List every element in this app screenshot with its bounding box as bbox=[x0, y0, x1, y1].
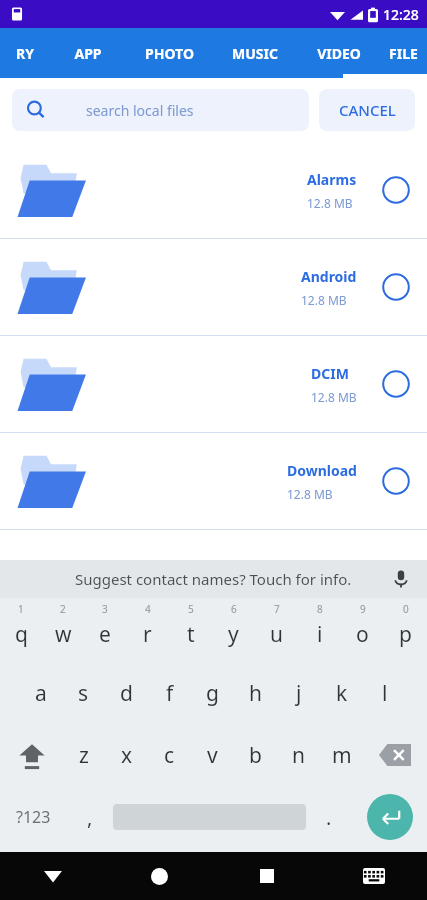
staticText: b bbox=[249, 741, 262, 770]
button[interactable]: b bbox=[234, 724, 277, 786]
button[interactable]: 1 bbox=[0, 598, 42, 662]
staticText: x bbox=[121, 741, 133, 770]
button[interactable]: 0 bbox=[384, 598, 427, 662]
button[interactable]: 5 bbox=[169, 598, 212, 662]
button[interactable]: MUSIC bbox=[213, 28, 297, 78]
button[interactable]: Suggest contact names? Touch for info. bbox=[0, 560, 427, 598]
button[interactable]: v bbox=[191, 724, 234, 786]
staticText: r bbox=[143, 620, 152, 649]
button[interactable]: n bbox=[277, 724, 320, 786]
button[interactable]: RY bbox=[0, 28, 50, 78]
staticText: p bbox=[399, 620, 412, 649]
staticText: PHOTO bbox=[145, 44, 194, 63]
staticText: CANCEL bbox=[339, 100, 396, 120]
staticText: Alarms bbox=[307, 170, 357, 189]
button[interactable]: s bbox=[62, 662, 105, 724]
button[interactable]: Select Download bbox=[381, 466, 411, 496]
button[interactable]: ?123 bbox=[0, 786, 67, 848]
staticText: 8 bbox=[317, 602, 323, 616]
button[interactable]: Switch keyboard bbox=[320, 852, 427, 900]
staticText: , bbox=[87, 804, 93, 831]
button[interactable]: x bbox=[105, 724, 148, 786]
button[interactable]: 3 bbox=[84, 598, 126, 662]
button[interactable]: l bbox=[363, 662, 406, 724]
staticText: m bbox=[332, 741, 352, 770]
staticText: t bbox=[187, 620, 195, 649]
button[interactable]: Voice input bbox=[389, 567, 413, 591]
staticText: l bbox=[382, 679, 388, 708]
staticText: i bbox=[317, 620, 323, 649]
staticText: 0 bbox=[403, 602, 409, 616]
staticText: q bbox=[15, 620, 28, 649]
staticText: u bbox=[270, 620, 283, 649]
button[interactable]: PHOTO bbox=[126, 28, 213, 78]
button[interactable]: 8 bbox=[298, 598, 341, 662]
staticText: Download bbox=[287, 461, 357, 480]
staticText: MUSIC bbox=[232, 44, 278, 63]
staticText: e bbox=[99, 620, 111, 649]
staticText: . bbox=[326, 804, 332, 831]
button[interactable]: c bbox=[148, 724, 191, 786]
button[interactable]: Select DCIM bbox=[381, 369, 411, 399]
button[interactable]: Download bbox=[0, 433, 427, 530]
button[interactable]: 7 bbox=[255, 598, 298, 662]
button[interactable]: search local files bbox=[12, 89, 309, 131]
staticText: 12.8 MB bbox=[311, 389, 357, 405]
button[interactable]: 4 bbox=[126, 598, 169, 662]
button[interactable]: VIDEO bbox=[297, 28, 380, 78]
button[interactable]: 2 bbox=[42, 598, 84, 662]
button[interactable]: Select Android bbox=[381, 272, 411, 302]
staticText: o bbox=[356, 620, 369, 649]
staticText: 9 bbox=[360, 602, 366, 616]
staticText: g bbox=[206, 679, 219, 708]
staticText: 12.8 MB bbox=[307, 195, 353, 211]
staticText: Android bbox=[301, 267, 357, 286]
staticText: RY bbox=[16, 44, 34, 63]
button[interactable]: d bbox=[105, 662, 148, 724]
button[interactable]: Recents bbox=[213, 852, 320, 900]
button[interactable]: Home bbox=[106, 852, 213, 900]
staticText: a bbox=[35, 679, 47, 708]
staticText: 7 bbox=[274, 602, 280, 616]
staticText: c bbox=[164, 741, 175, 770]
button[interactable]: Select Alarms bbox=[381, 175, 411, 205]
staticText: 4 bbox=[145, 602, 151, 616]
button[interactable]: Back bbox=[0, 852, 106, 900]
button[interactable]: Android bbox=[0, 239, 427, 336]
button[interactable]: Alarms bbox=[0, 142, 427, 239]
button[interactable]: h bbox=[234, 662, 277, 724]
staticText: z bbox=[79, 741, 89, 770]
button[interactable]: a bbox=[20, 662, 62, 724]
button[interactable]: 9 bbox=[341, 598, 384, 662]
button[interactable]: g bbox=[191, 662, 234, 724]
button[interactable]: Enter bbox=[352, 786, 427, 848]
staticText: 5 bbox=[188, 602, 194, 616]
button[interactable]: Backspace bbox=[363, 724, 427, 786]
staticText: ?123 bbox=[16, 806, 51, 828]
button[interactable]: APP bbox=[50, 28, 126, 78]
button[interactable] bbox=[113, 786, 306, 848]
button[interactable]: CANCEL bbox=[319, 89, 415, 131]
button[interactable]: k bbox=[320, 662, 363, 724]
button[interactable]: FILE bbox=[380, 28, 427, 78]
staticText: s bbox=[78, 679, 89, 708]
staticText: w bbox=[55, 620, 72, 649]
staticText: search local files bbox=[86, 101, 194, 120]
button[interactable]: z bbox=[63, 724, 105, 786]
staticText: 1 bbox=[18, 602, 24, 616]
button[interactable]: 6 bbox=[212, 598, 255, 662]
staticText: 2 bbox=[60, 602, 66, 616]
button[interactable]: DCIM bbox=[0, 336, 427, 433]
staticText: v bbox=[207, 741, 218, 770]
button[interactable]: f bbox=[148, 662, 191, 724]
staticText: 12.8 MB bbox=[301, 292, 347, 308]
staticText: 3 bbox=[102, 602, 108, 616]
button[interactable]: , bbox=[67, 786, 113, 848]
staticText: h bbox=[249, 679, 262, 708]
staticText: f bbox=[166, 679, 174, 708]
button[interactable]: m bbox=[320, 724, 363, 786]
button[interactable]: . bbox=[306, 786, 352, 848]
button[interactable]: j bbox=[277, 662, 320, 724]
button[interactable]: Shift bbox=[0, 724, 63, 786]
staticText: FILE bbox=[389, 44, 418, 63]
